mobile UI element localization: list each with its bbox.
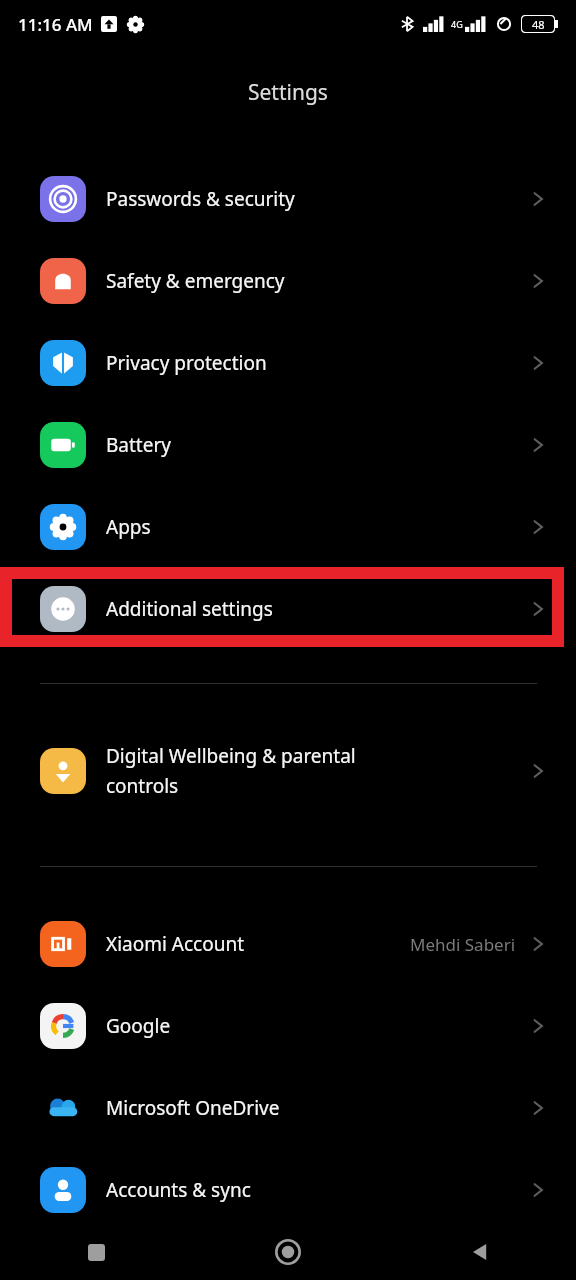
button[interactable]: Accounts & sync xyxy=(0,1157,576,1223)
button[interactable]: Safety & emergency xyxy=(0,248,576,314)
button[interactable]: Battery xyxy=(0,412,576,478)
staticText: Xiaomi Account xyxy=(106,931,245,957)
staticText: Passwords & security xyxy=(106,186,295,212)
button[interactable]: Digital Wellbeing & parental xyxy=(0,730,576,812)
staticText: Accounts & sync xyxy=(106,1177,251,1203)
button[interactable]: Microsoft OneDrive xyxy=(0,1075,576,1141)
staticText: Apps xyxy=(106,514,151,540)
button[interactable]: Back xyxy=(384,1224,576,1280)
button[interactable]: Google xyxy=(0,993,576,1059)
staticText: 4G xyxy=(451,18,463,30)
staticText: 48 xyxy=(532,17,545,32)
button[interactable]: Apps xyxy=(0,494,576,560)
button[interactable]: Passwords & security xyxy=(0,166,576,232)
staticText: Safety & emergency xyxy=(106,268,285,294)
button[interactable]: Privacy protection xyxy=(0,330,576,396)
staticText: Digital Wellbeing & parental xyxy=(106,743,356,769)
button[interactable]: Additional settings xyxy=(0,576,576,642)
staticText: 11:16 AM xyxy=(18,13,93,36)
staticText: Settings xyxy=(248,78,328,107)
button[interactable]: Home xyxy=(192,1224,384,1280)
staticText: Microsoft OneDrive xyxy=(106,1095,280,1121)
button[interactable]: Xiaomi Account xyxy=(0,911,576,977)
staticText: Additional settings xyxy=(106,596,273,622)
staticText: Battery xyxy=(106,432,171,458)
staticText: Privacy protection xyxy=(106,350,267,376)
staticText: Google xyxy=(106,1013,171,1039)
button[interactable]: Recent apps xyxy=(0,1224,192,1280)
staticText: Mehdi Saberi xyxy=(410,933,516,956)
staticText: controls xyxy=(106,773,179,799)
